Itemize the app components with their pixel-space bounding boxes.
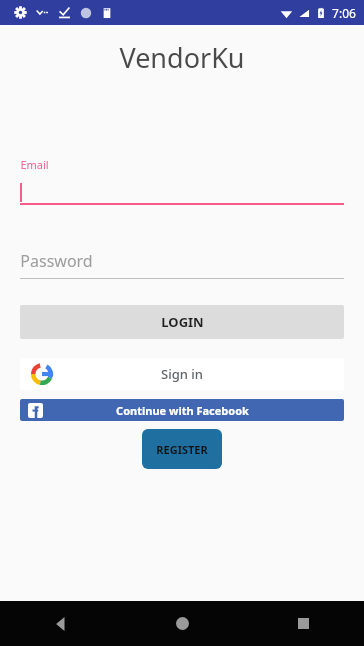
staticText: 7:06 [332,5,356,21]
button[interactable] [20,181,344,203]
staticText: REGISTER [156,442,208,457]
button[interactable]: Home [122,601,243,646]
staticText: Password [20,250,93,272]
button[interactable]: LOGIN [20,305,344,339]
button[interactable]: Back [0,601,122,646]
staticText: VendorKu [119,39,245,76]
staticText: LOGIN [161,313,204,331]
staticText: Sign in [161,365,203,383]
staticText: Email [20,157,49,172]
button[interactable]: Continue with Facebook [20,399,344,421]
button[interactable]: Password [20,249,344,273]
button[interactable]: REGISTER [142,429,222,469]
button[interactable]: Sign in [20,358,344,390]
staticText: Continue with Facebook [116,403,249,418]
button[interactable]: Recents [243,601,364,646]
